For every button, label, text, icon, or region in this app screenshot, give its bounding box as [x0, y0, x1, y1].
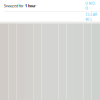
button[interactable]: CLEAR ALL: [86, 12, 97, 21]
staticText: UNDO: [85, 1, 96, 10]
staticText: CLEAR ALL: [86, 12, 97, 21]
staticText: Snoozed for 1 hour: [4, 3, 36, 8]
button[interactable]: UNDO: [85, 1, 96, 10]
